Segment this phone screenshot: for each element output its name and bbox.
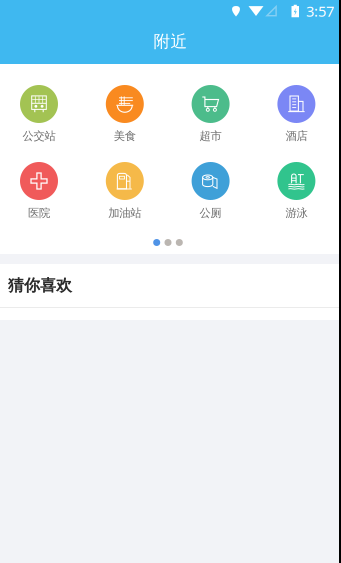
button[interactable]: 公厕: [168, 162, 253, 219]
staticText: 猜你喜欢: [8, 275, 72, 296]
staticText: 附近: [153, 31, 187, 52]
button[interactable]: 美食: [82, 85, 168, 142]
button[interactable]: 超市: [168, 85, 253, 142]
button[interactable]: 医院: [0, 162, 82, 219]
staticText: 医院: [28, 206, 50, 220]
staticText: 酒店: [285, 129, 307, 143]
button[interactable]: 游泳: [253, 162, 339, 219]
staticText: 游泳: [285, 206, 307, 220]
staticText: 加油站: [108, 206, 141, 220]
staticText: 公厕: [200, 206, 222, 220]
button[interactable]: 酒店: [253, 85, 339, 142]
staticText: 超市: [200, 129, 222, 143]
staticText: 3:57: [306, 1, 334, 21]
staticText: 美食: [114, 129, 136, 143]
button[interactable]: 加油站: [82, 162, 168, 219]
button[interactable]: 公交站: [0, 85, 82, 142]
staticText: 公交站: [22, 129, 55, 143]
